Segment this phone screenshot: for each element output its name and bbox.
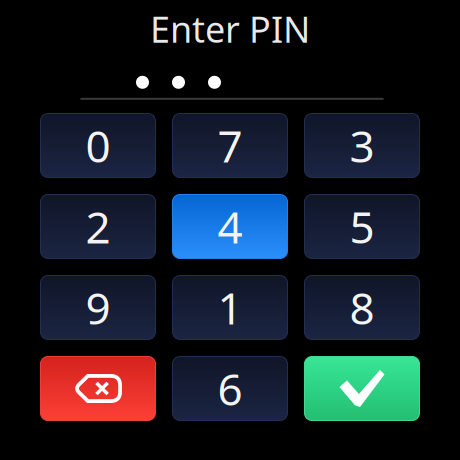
button[interactable]: 7 [172, 113, 288, 178]
staticText: Enter PIN [150, 5, 310, 53]
staticText: 5 [349, 197, 374, 256]
staticText: 7 [217, 116, 242, 175]
button[interactable]: 3 [304, 113, 420, 178]
button[interactable]: 6 [172, 356, 288, 421]
button[interactable]: Confirm [304, 356, 420, 421]
staticText: 6 [217, 359, 242, 418]
button[interactable]: 4 [172, 194, 288, 259]
staticText: 8 [349, 278, 374, 337]
button[interactable]: 1 [172, 275, 288, 340]
button[interactable]: 5 [304, 194, 420, 259]
staticText: 3 [349, 116, 374, 175]
button[interactable]: 9 [40, 275, 156, 340]
staticText: 1 [217, 278, 242, 337]
staticText: 2 [85, 197, 110, 256]
staticText: 0 [85, 116, 110, 175]
button[interactable]: Delete [40, 356, 156, 421]
button[interactable]: 2 [40, 194, 156, 259]
staticText: 9 [85, 278, 110, 337]
button[interactable]: 8 [304, 275, 420, 340]
button[interactable]: 0 [40, 113, 156, 178]
staticText: 4 [217, 197, 242, 256]
